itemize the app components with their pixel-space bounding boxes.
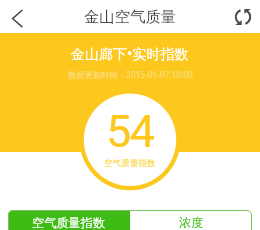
button[interactable]: 空气质量指数 xyxy=(8,210,130,230)
button[interactable]: 浓度 xyxy=(130,210,252,230)
staticText: 金山廊下•实时指数 xyxy=(71,44,189,63)
staticText: 浓度 xyxy=(179,215,204,230)
staticText: 54 xyxy=(106,105,154,158)
button[interactable]: Refresh xyxy=(230,4,256,30)
staticText: 空气质量指数 xyxy=(104,158,156,169)
staticText: 金山空气质量 xyxy=(84,7,176,26)
staticText: 空气质量指数 xyxy=(32,215,106,230)
button[interactable]: Back xyxy=(4,4,30,30)
staticText: 数据更新时间：2015-01-07 10:00 xyxy=(68,69,193,80)
